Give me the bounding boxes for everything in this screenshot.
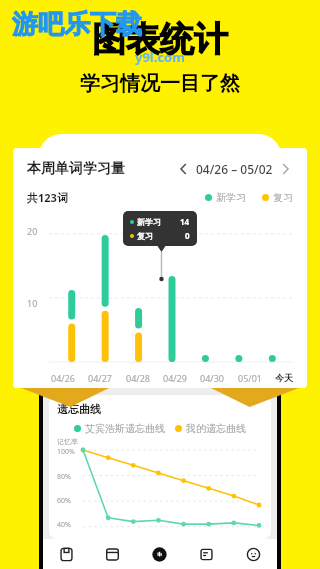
staticText: 04/30 <box>200 372 224 384</box>
staticText: 04/27 <box>88 372 112 384</box>
staticText: 本周单词学习量 <box>27 160 125 178</box>
button[interactable]: Notes <box>183 539 230 569</box>
staticText: 今天 <box>275 372 293 383</box>
button[interactable]: Next week <box>277 161 293 177</box>
staticText: 40% <box>57 520 71 530</box>
staticText: 04/28 <box>126 372 150 384</box>
staticText: 60% <box>57 496 71 506</box>
staticText: 艾宾浩斯遗忘曲线 <box>85 422 165 435</box>
staticText: 10 <box>27 297 38 309</box>
staticText: 游吧乐下载 <box>12 8 142 41</box>
staticText: 我的遗忘曲线 <box>186 422 246 435</box>
staticText: 80% <box>57 472 71 482</box>
staticText: 遗忘曲线 <box>57 402 101 416</box>
staticText: 学习情况一目了然 <box>80 71 240 96</box>
staticText: 复习 <box>273 191 293 204</box>
staticText: 04/26 <box>51 372 75 384</box>
staticText: 新学习 <box>137 217 161 227</box>
staticText: 04/29 <box>163 372 187 384</box>
staticText: 14 <box>180 216 190 227</box>
staticText: 共123词 <box>27 190 68 205</box>
staticText: 记忆率 <box>57 437 78 446</box>
button[interactable]: Profile <box>230 539 277 569</box>
staticText: 20 <box>27 225 38 237</box>
staticText: 图表统计 <box>92 18 228 61</box>
staticText: 0 <box>185 230 190 241</box>
staticText: 05/01 <box>238 372 262 384</box>
staticText: 100% <box>57 447 75 457</box>
staticText: y9l.com <box>135 48 185 66</box>
button[interactable]: Previous week <box>176 161 192 177</box>
button[interactable]: 新学习 <box>123 211 197 246</box>
button[interactable]: Statistics <box>136 539 183 569</box>
button[interactable]: Vocabulary <box>43 539 89 569</box>
staticText: 复习 <box>137 231 153 241</box>
staticText: 新学习 <box>216 191 246 204</box>
button[interactable]: 04/26 – 05/02 <box>196 161 273 177</box>
button[interactable]: Calendar <box>89 539 136 569</box>
